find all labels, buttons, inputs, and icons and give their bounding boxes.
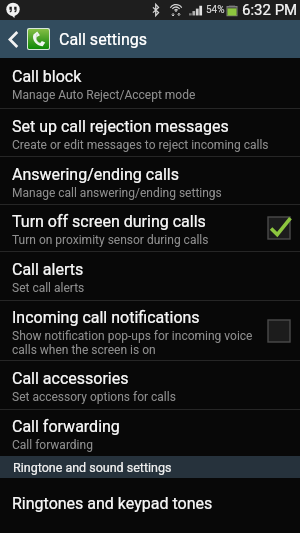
button[interactable]: Incoming call notifications: [0, 301, 300, 360]
staticText: Set call alerts: [12, 281, 85, 295]
staticText: Ringtones and keypad tones: [12, 494, 213, 513]
button[interactable]: Navigate up: [0, 20, 27, 58]
staticText: Call block: [12, 67, 82, 86]
staticText: Show notification pop-ups for incoming v…: [12, 329, 253, 357]
staticText: 54%: [206, 4, 225, 16]
staticText: Manage Auto Reject/Accept mode: [12, 88, 196, 102]
staticText: Call settings: [59, 30, 148, 49]
staticText: Ringtone and sound settings: [13, 460, 172, 475]
button[interactable]: Disabled checkbox: [268, 320, 290, 342]
button[interactable]: Call block: [0, 58, 300, 108]
staticText: Manage call answering/ending settings: [12, 186, 222, 200]
staticText: Call forwarding: [12, 417, 120, 436]
button[interactable]: Turn off screen during calls: [0, 205, 300, 251]
button[interactable]: Set up call rejection messages: [0, 109, 300, 156]
button[interactable]: Call alerts: [0, 252, 300, 300]
staticText: Set up call rejection messages: [12, 117, 229, 136]
button[interactable]: Call accessories: [0, 361, 300, 409]
staticText: Answering/ending calls: [12, 165, 179, 184]
button[interactable]: Call forwarding: [0, 410, 300, 456]
staticText: 6:32 PM: [242, 1, 298, 19]
staticText: Turn off screen during calls: [12, 212, 206, 231]
button[interactable]: Enabled checkbox: [268, 217, 290, 239]
staticText: Turn on proximity sensor during calls: [12, 233, 209, 247]
button[interactable]: Ringtones and keypad tones: [0, 478, 300, 526]
staticText: Set accessory options for calls: [12, 390, 176, 404]
staticText: Incoming call notifications: [12, 308, 200, 327]
staticText: Create or edit messages to reject incomi…: [12, 138, 269, 152]
staticText: Call accessories: [12, 369, 129, 388]
staticText: Call alerts: [12, 260, 84, 279]
staticText: Call forwarding: [12, 438, 93, 452]
button[interactable]: Answering/ending calls: [0, 157, 300, 204]
